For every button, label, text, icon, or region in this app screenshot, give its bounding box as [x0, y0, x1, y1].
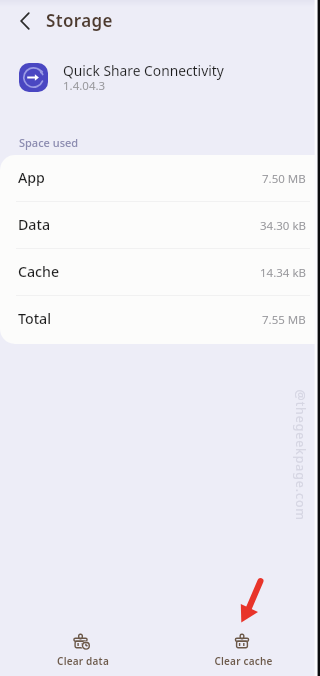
button[interactable]: App: [0, 155, 320, 202]
staticText: Clear data: [57, 654, 109, 668]
staticText: @thegeekpage.com: [291, 389, 308, 521]
button[interactable]: Total: [0, 296, 320, 343]
staticText: App: [18, 168, 45, 187]
staticText: Quick Share Connectivity: [63, 61, 224, 80]
staticText: 7.50 MB: [262, 171, 306, 187]
button[interactable]: Quick Share Connectivity: [0, 56, 320, 96]
button[interactable]: Back: [11, 6, 39, 36]
staticText: Storage: [46, 9, 113, 32]
button[interactable]: Cache: [0, 249, 320, 296]
button[interactable]: Data: [0, 202, 320, 249]
staticText: Space used: [19, 135, 79, 150]
staticText: 14.34 kB: [260, 265, 306, 281]
staticText: Clear cache: [214, 654, 273, 668]
staticText: Data: [18, 215, 51, 234]
staticText: Total: [18, 309, 52, 328]
button[interactable]: Clear data: [3, 616, 163, 676]
staticText: 1.4.04.3: [63, 78, 106, 94]
staticText: 34.30 kB: [260, 218, 306, 234]
staticText: 7.55 MB: [262, 312, 306, 328]
staticText: Cache: [18, 262, 60, 281]
button[interactable]: Clear cache: [163, 616, 320, 676]
